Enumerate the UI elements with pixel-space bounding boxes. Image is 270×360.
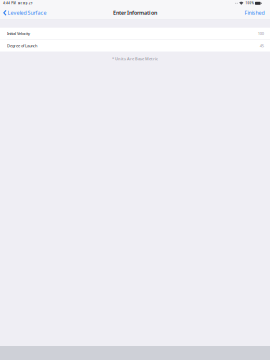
staticText: 4:44 PM <box>3 1 15 5</box>
staticText: Initial Velocity <box>7 31 30 36</box>
staticText: 100 <box>258 31 264 36</box>
button[interactable]: Degree of Launch <box>0 40 270 51</box>
staticText: Leveled Surface <box>8 9 47 16</box>
staticText: Degree of Launch <box>7 43 37 48</box>
staticText: Enter Information <box>113 9 157 16</box>
staticText: 45 <box>260 43 264 48</box>
button[interactable]: Initial Velocity <box>0 28 270 39</box>
staticText: Finished <box>244 9 264 16</box>
staticText: 100% <box>245 1 253 5</box>
button[interactable]: Leveled Surface <box>0 7 50 19</box>
staticText: * Units Are Base Metric <box>112 56 158 61</box>
button[interactable]: Finished <box>241 7 270 19</box>
staticText: Sat Sep 29 <box>18 1 33 5</box>
